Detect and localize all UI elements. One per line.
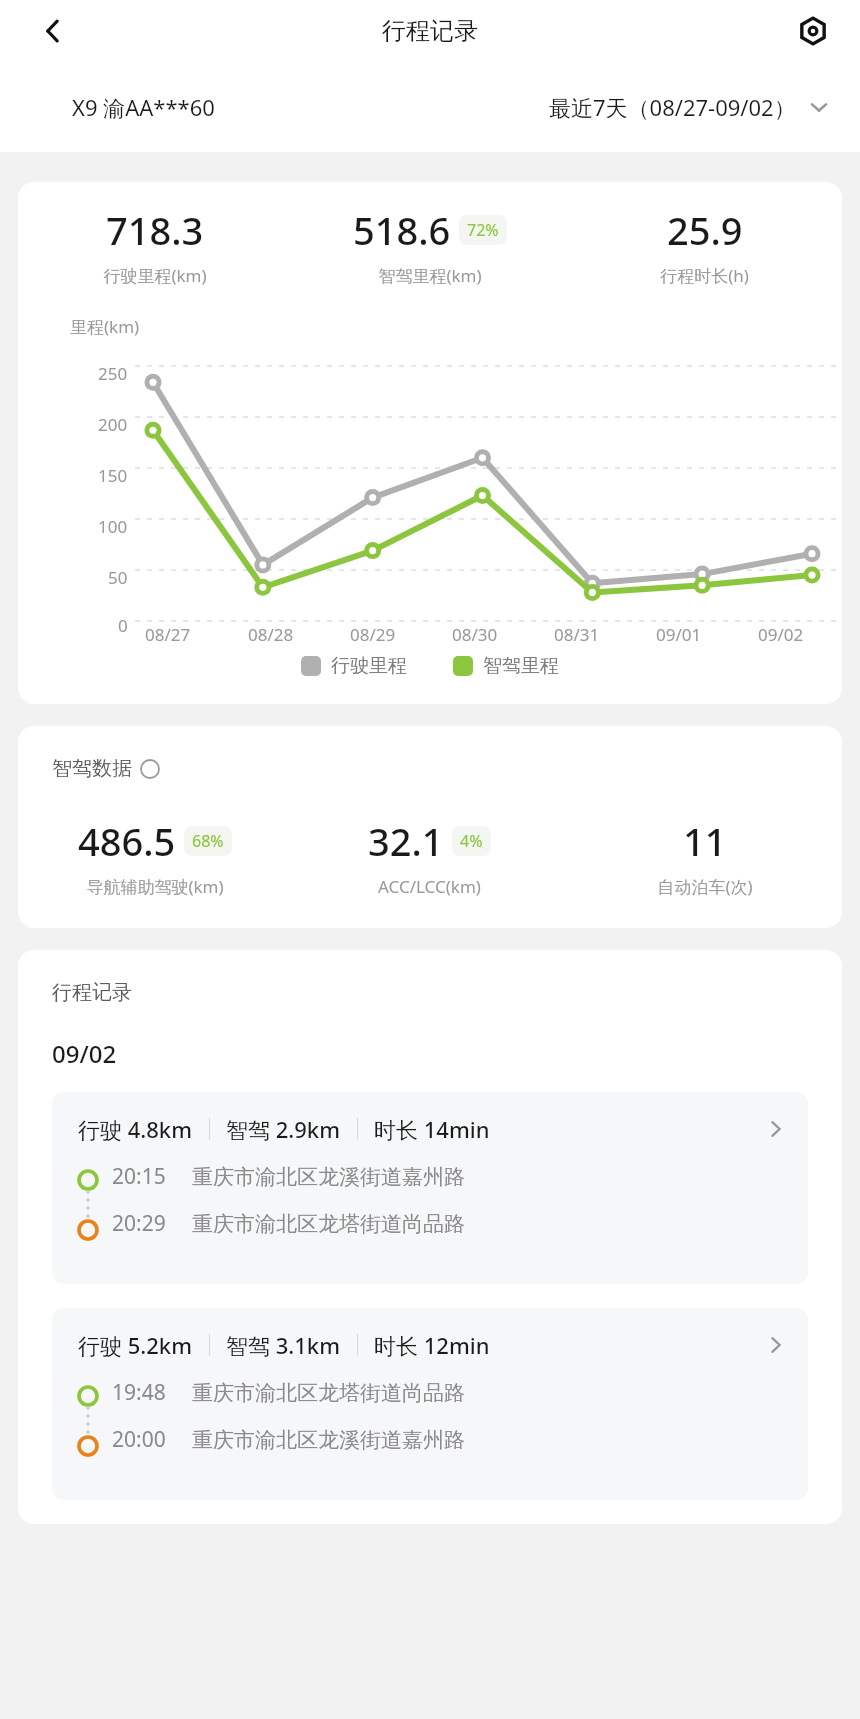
staticText: ACC/LCC(km)	[378, 875, 481, 898]
button[interactable]: 智驾里程	[453, 654, 559, 678]
staticText: 08/30	[452, 623, 498, 646]
staticText: 行程记录	[382, 16, 478, 46]
staticText: 08/27	[145, 623, 191, 646]
staticText: 重庆市渝北区龙溪街道嘉州路	[192, 1164, 465, 1190]
staticText: 08/29	[350, 623, 396, 646]
staticText: 68%	[192, 830, 224, 852]
staticText: 时长 14min	[374, 1114, 490, 1144]
staticText: X9 渝AA***60	[72, 92, 215, 122]
staticText: 08/31	[554, 623, 600, 646]
staticText: 718.3	[106, 204, 204, 256]
button[interactable]: 行驶里程	[301, 654, 407, 678]
staticText: 智驾 2.9km	[226, 1114, 341, 1144]
staticText: 09/02	[758, 623, 804, 646]
staticText: 100	[98, 515, 128, 538]
staticText: 4%	[460, 830, 483, 852]
staticText: 里程(km)	[70, 315, 140, 338]
staticText: 智驾里程	[483, 654, 559, 678]
staticText: 自动泊车(次)	[657, 875, 753, 898]
button[interactable]: 行驶 4.8km	[52, 1092, 808, 1284]
staticText: 行驶 4.8km	[78, 1114, 193, 1144]
staticText: 时长 12min	[374, 1330, 490, 1360]
staticText: 20:00	[112, 1425, 166, 1454]
staticText: 行驶 5.2km	[78, 1330, 193, 1360]
staticText: 最近7天（08/27-09/02）	[549, 92, 796, 122]
staticText: 32.1	[368, 815, 444, 867]
staticText: 0	[118, 614, 128, 637]
staticText: 重庆市渝北区龙溪街道嘉州路	[192, 1427, 465, 1453]
staticText: 导航辅助驾驶(km)	[86, 875, 224, 898]
staticText: 智驾 3.1km	[226, 1330, 341, 1360]
staticText: 20:29	[112, 1209, 166, 1238]
staticText: 09/02	[52, 1037, 117, 1070]
staticText: 250	[98, 362, 128, 385]
staticText: 行驶里程	[331, 654, 407, 678]
staticText: 150	[98, 464, 128, 487]
staticText: 智驾里程(km)	[378, 264, 482, 287]
staticText: 09/01	[656, 623, 702, 646]
staticText: 200	[98, 413, 128, 436]
staticText: 行程时长(h)	[660, 264, 749, 287]
staticText: 72%	[467, 219, 499, 241]
button[interactable]: 最近7天（08/27-09/02）	[549, 92, 830, 122]
staticText: 25.9	[667, 204, 743, 256]
staticText: 行驶里程(km)	[103, 264, 207, 287]
staticText: 行程记录	[52, 980, 132, 1005]
staticText: 50	[108, 566, 128, 589]
staticText: 486.5	[78, 815, 176, 867]
staticText: 20:15	[112, 1162, 166, 1191]
button[interactable]: 行驶 5.2km	[52, 1308, 808, 1500]
staticText: 11	[683, 815, 727, 867]
staticText: 518.6	[353, 204, 451, 256]
staticText: 重庆市渝北区龙塔街道尚品路	[192, 1380, 465, 1406]
staticText: 重庆市渝北区龙塔街道尚品路	[192, 1211, 465, 1237]
button[interactable]: Back	[30, 8, 76, 54]
button[interactable]: Settings	[790, 8, 836, 54]
staticText: 08/28	[248, 623, 294, 646]
staticText: 智驾数据	[52, 756, 132, 781]
staticText: 19:48	[112, 1378, 166, 1407]
